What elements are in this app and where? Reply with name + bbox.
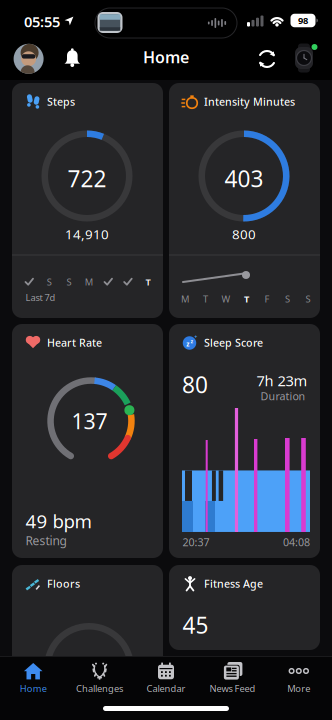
staticText: S [305,293,310,305]
button[interactable]: Sync [256,48,278,70]
staticText: 49 bpm [25,509,91,533]
button[interactable]: Notifications [63,47,82,67]
staticText: z [186,340,189,348]
button[interactable]: Profile [14,44,44,74]
staticText: M [181,293,189,305]
staticText: S [66,276,71,288]
button[interactable]: Device [292,43,318,72]
button[interactable]: Intensity Minutes [169,83,320,318]
button[interactable]: Steps [12,83,163,318]
staticText: 04:08 [283,535,310,549]
button[interactable]: z [169,324,320,558]
staticText: Sleep Score [204,335,263,350]
staticText: S [47,276,52,288]
staticText: Steps [47,94,75,109]
staticText: 05:55 [24,12,60,31]
staticText: 14,910 [65,225,109,243]
staticText: Last 7d [25,291,55,304]
staticText: 80 [182,369,208,399]
button[interactable]: Heart Rate [12,324,163,558]
staticText: + [194,333,197,341]
staticText: z [190,338,193,345]
staticText: Duration [260,389,305,403]
staticText: T [145,276,150,288]
staticText: 7h 23m [256,371,307,390]
staticText: 98 [298,14,308,27]
button[interactable]: Fitness Age [169,565,320,650]
staticText: 800 [232,225,256,243]
staticText: S [285,293,290,305]
staticText: T [244,293,249,305]
staticText: Floors [47,576,80,591]
staticText: Home [20,682,47,695]
button[interactable]: Challenges [67,658,133,702]
staticText: Challenges [76,682,123,695]
staticText: W [221,293,230,305]
staticText: News Feed [209,682,255,695]
button[interactable]: Home [0,658,66,702]
staticText: M [85,276,93,288]
staticText: 45 [182,610,208,640]
staticText: 20:37 [183,535,210,549]
staticText: 137 [71,407,107,435]
staticText: 722 [67,163,106,193]
button[interactable]: Floors [12,565,163,666]
button[interactable]: News Feed [199,658,265,702]
staticText: Resting [25,532,66,548]
staticText: Fitness Age [204,576,263,591]
staticText: Intensity Minutes [204,94,295,109]
staticText: Home [143,46,189,68]
staticText: T [203,293,208,305]
staticText: More [287,682,310,695]
button[interactable]: More [266,658,332,702]
staticText: 403 [224,163,263,193]
staticText: Calendar [146,682,185,695]
staticText: Heart Rate [47,335,102,350]
staticText: F [264,293,269,305]
button[interactable]: Calendar [133,658,199,702]
